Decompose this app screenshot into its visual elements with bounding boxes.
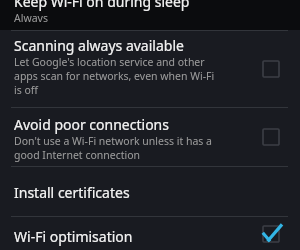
- staticText: Always: [14, 11, 48, 22]
- button[interactable]: Keep Wi-Fi on during sleep: [0, 0, 300, 30]
- staticText: apps scan for networks, even when Wi-Fi: [14, 69, 215, 83]
- button[interactable]: Avoid poor connections: [0, 108, 300, 166]
- button[interactable]: Scanning always available: [0, 31, 300, 107]
- button[interactable]: Wi-Fi optimisation: [0, 217, 300, 250]
- button[interactable]: Wi-Fi optimisation: [248, 217, 294, 250]
- staticText: Install certificates: [14, 183, 130, 202]
- staticText: Don't use a Wi-Fi network unless it has …: [14, 134, 212, 148]
- staticText: Wi-Fi optimisation: [14, 227, 133, 246]
- button[interactable]: Avoid poor connections: [248, 120, 294, 154]
- staticText: Keep Wi-Fi on during sleep: [14, 0, 190, 11]
- staticText: Avoid poor connections: [14, 115, 169, 134]
- staticText: Let Google's location service and other: [14, 55, 205, 69]
- button[interactable]: Scanning always available: [248, 52, 294, 86]
- staticText: good Internet connection: [14, 148, 141, 162]
- staticText: Scanning always available: [14, 36, 184, 55]
- button[interactable]: Install certificates: [0, 167, 300, 216]
- staticText: is off: [14, 83, 39, 97]
